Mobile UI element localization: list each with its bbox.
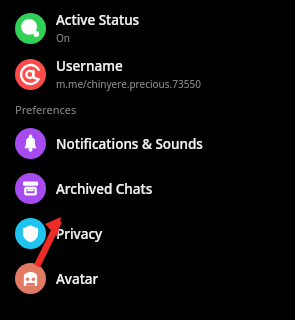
- button[interactable]: Privacy: [0, 211, 295, 256]
- staticText: Active Status: [56, 11, 140, 29]
- staticText: Archived Chats: [56, 180, 153, 198]
- staticText: Username: [56, 57, 123, 75]
- staticText: Preferences: [15, 102, 77, 117]
- button[interactable]: Archived Chats: [0, 166, 295, 211]
- staticText: Notifications & Sounds: [56, 135, 203, 153]
- button[interactable]: Avatar: [0, 256, 295, 301]
- staticText: m.me/chinyere.precious.73550: [56, 77, 201, 91]
- button[interactable]: Username: [0, 51, 295, 97]
- button[interactable]: Notifications & Sounds: [0, 121, 295, 166]
- staticText: Privacy: [56, 225, 103, 243]
- staticText: On: [56, 31, 70, 45]
- button[interactable]: Active Status: [0, 5, 295, 51]
- staticText: Avatar: [56, 270, 99, 288]
